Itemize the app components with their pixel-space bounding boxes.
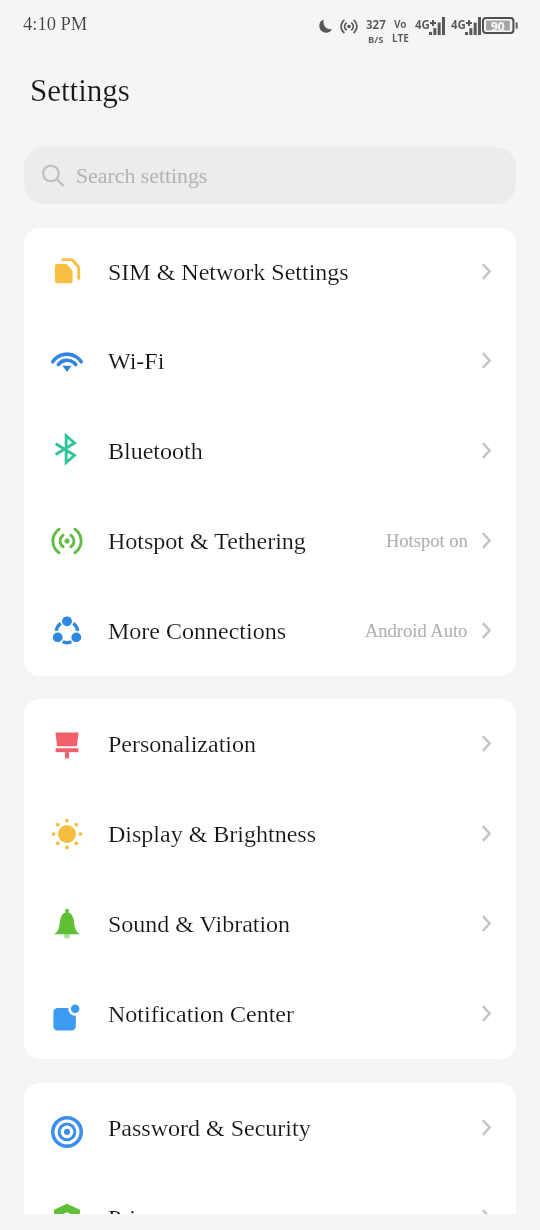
staticText: Search settings <box>76 164 208 188</box>
button[interactable]: Wi-Fi <box>24 317 516 406</box>
staticText: Wi-Fi <box>108 348 165 375</box>
staticText: 327 <box>366 17 386 33</box>
button[interactable]: Bluetooth <box>24 406 516 496</box>
button[interactable]: Search settings <box>24 147 516 204</box>
staticText: Hotspot on <box>386 531 468 551</box>
staticText: Privacy <box>108 1205 182 1214</box>
staticText: B/S <box>368 33 384 46</box>
staticText: Sound & Vibration <box>108 911 291 938</box>
button[interactable]: Hotspot & Tethering <box>24 496 516 586</box>
staticText: 4G <box>415 17 430 33</box>
button[interactable]: Personalization <box>24 699 516 789</box>
staticText: Settings <box>30 73 130 107</box>
button[interactable]: Notification Center <box>24 969 516 1059</box>
staticText: Notification Center <box>108 1001 294 1028</box>
staticText: Android Auto <box>365 621 468 641</box>
button[interactable]: Password & Security <box>24 1083 516 1173</box>
staticText: Hotspot & Tethering <box>108 528 306 555</box>
staticText: More Connections <box>108 618 286 645</box>
staticText: 4:10 PM <box>23 14 88 34</box>
staticText: LTE <box>392 31 409 45</box>
staticText: 90 <box>491 18 505 33</box>
button[interactable]: More Connections <box>24 586 516 676</box>
button[interactable]: SIM & Network Settings <box>24 228 516 317</box>
button[interactable]: Privacy <box>24 1173 516 1214</box>
button[interactable]: Sound & Vibration <box>24 879 516 969</box>
staticText: Personalization <box>108 731 256 758</box>
button[interactable]: Display & Brightness <box>24 789 516 879</box>
staticText: Display & Brightness <box>108 821 316 848</box>
staticText: Bluetooth <box>108 438 203 465</box>
staticText: Password & Security <box>108 1115 311 1142</box>
staticText: Vo <box>394 17 407 31</box>
staticText: SIM & Network Settings <box>108 259 349 286</box>
staticText: 4G <box>451 17 466 33</box>
